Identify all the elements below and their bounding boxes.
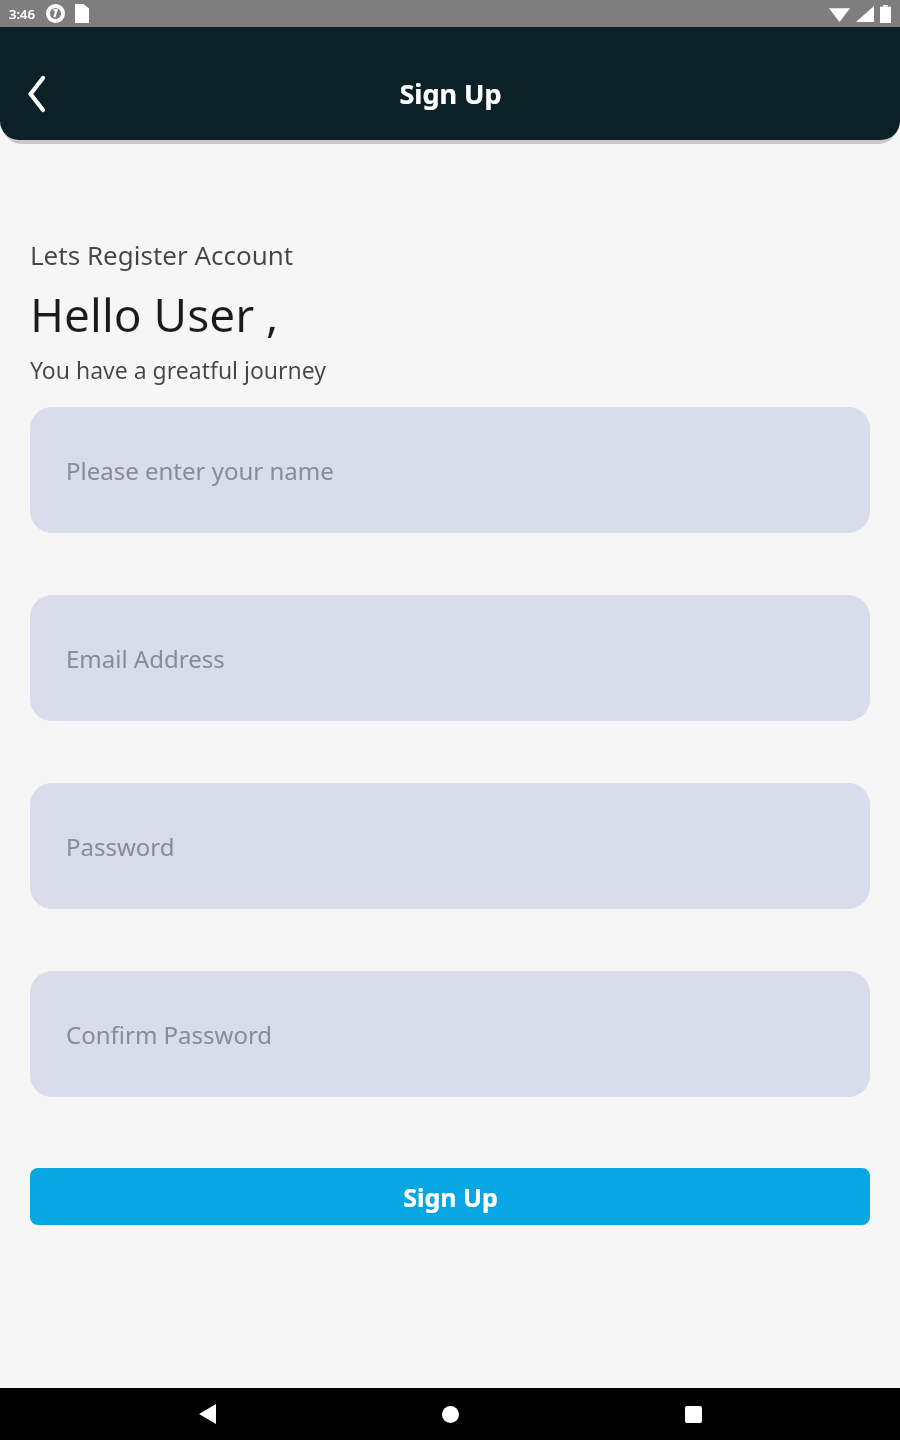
staticText: Sign Up: [403, 1180, 498, 1214]
staticText: Password: [66, 830, 175, 863]
staticText: Confirm Password: [66, 1018, 273, 1051]
staticText: Lets Register Account: [30, 237, 294, 272]
staticText: Hello User ,: [30, 283, 279, 346]
button[interactable]: Back: [8, 65, 66, 123]
button[interactable]: Back: [171, 1388, 243, 1440]
button[interactable]: Email Address: [30, 595, 870, 721]
staticText: Please enter your name: [66, 454, 334, 487]
button[interactable]: Please enter your name: [30, 407, 870, 533]
button[interactable]: Password: [30, 783, 870, 909]
staticText: You have a greatful journey: [30, 354, 327, 385]
staticText: Sign Up: [399, 75, 502, 112]
button[interactable]: Confirm Password: [30, 971, 870, 1097]
button[interactable]: Recent apps: [657, 1388, 729, 1440]
button[interactable]: Home: [414, 1388, 486, 1440]
staticText: Email Address: [66, 642, 225, 675]
button[interactable]: Sign Up: [30, 1168, 870, 1225]
staticText: 3:46: [9, 5, 35, 23]
